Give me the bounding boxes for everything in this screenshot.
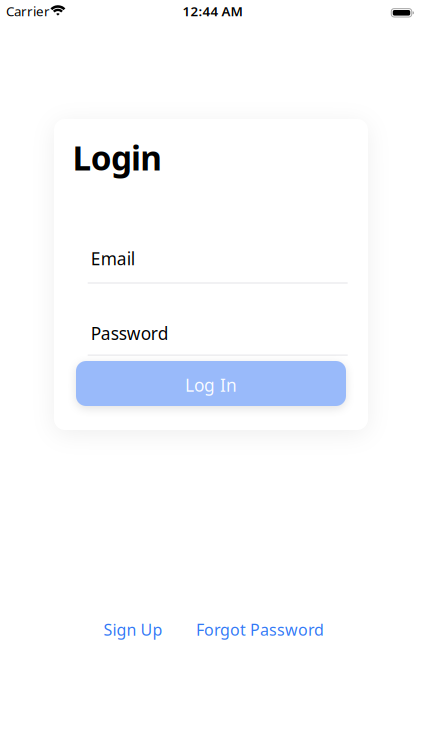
- button[interactable]: Email: [88, 244, 348, 288]
- staticText: Forgot Password: [196, 619, 324, 640]
- button[interactable]: Forgot Password: [196, 614, 326, 644]
- staticText: Sign Up: [103, 619, 162, 640]
- staticText: Password: [91, 322, 169, 345]
- staticText: Log In: [185, 374, 237, 397]
- staticText: Email: [91, 247, 135, 270]
- staticText: Carrier: [6, 2, 50, 20]
- button[interactable]: Log In: [76, 361, 346, 406]
- button[interactable]: Password: [88, 318, 348, 362]
- button[interactable]: Sign Up: [103, 614, 183, 644]
- staticText: 12:44 AM: [182, 2, 242, 20]
- staticText: Login: [72, 135, 162, 180]
